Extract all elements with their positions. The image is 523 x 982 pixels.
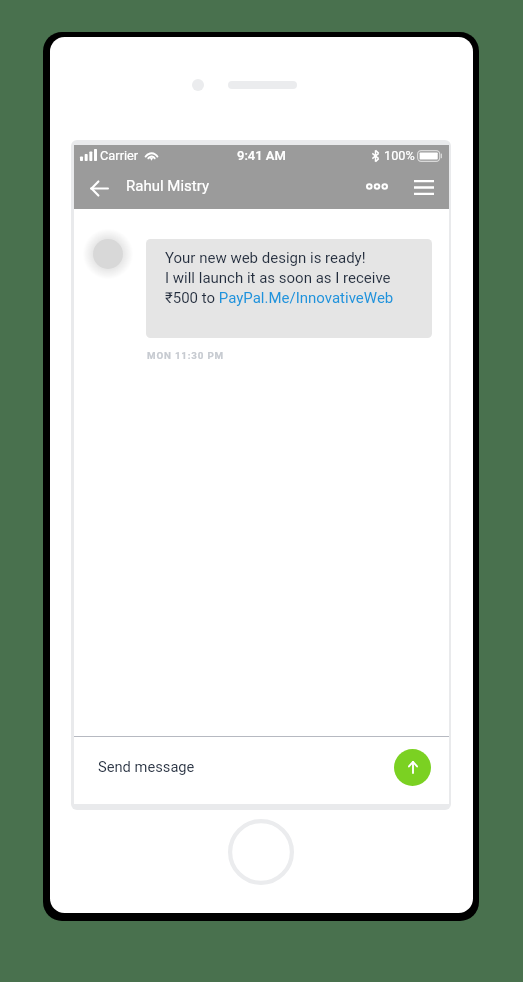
staticText: Send message — [98, 758, 195, 775]
staticText: MON 11:30 PM — [147, 350, 224, 361]
staticText: 9:41 AM — [237, 148, 286, 163]
button[interactable]: More options — [363, 173, 391, 200]
staticText: Carrier — [100, 148, 139, 163]
staticText: 100% — [384, 148, 415, 163]
button[interactable]: Back — [84, 175, 114, 201]
button[interactable]: Your new web design is ready! I will lau… — [146, 239, 432, 338]
button[interactable]: Menu — [411, 174, 437, 201]
staticText: Your new web design is ready! I will lau… — [165, 249, 394, 306]
staticText: Rahul Mistry — [126, 177, 210, 195]
button[interactable]: Send — [394, 749, 431, 786]
